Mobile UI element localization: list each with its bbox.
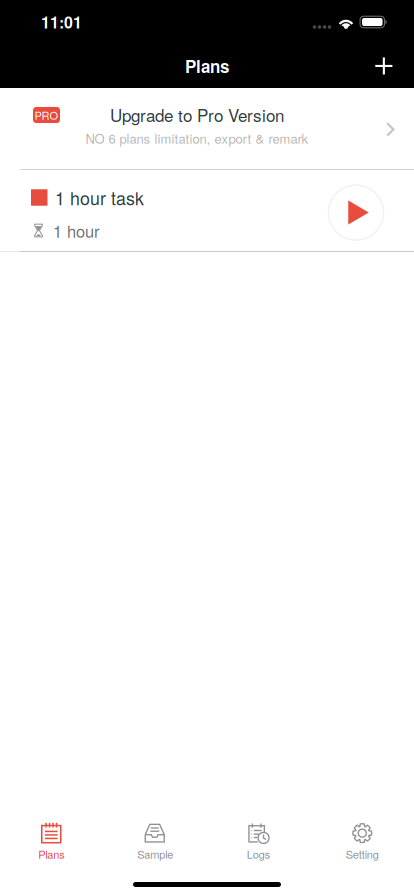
button[interactable]: 1 hour task bbox=[0, 170, 414, 251]
staticText: NO 6 plans limitation, export & remark bbox=[85, 129, 308, 147]
staticText: 11:01 bbox=[41, 10, 82, 33]
button[interactable]: Plans bbox=[0, 813, 103, 862]
staticText: Sample bbox=[137, 846, 173, 862]
button[interactable]: Setting bbox=[310, 813, 414, 862]
staticText: 1 hour bbox=[53, 219, 99, 242]
staticText: Plans bbox=[38, 846, 65, 862]
button[interactable]: Sample bbox=[103, 813, 207, 862]
button[interactable]: PRO bbox=[0, 88, 414, 169]
staticText: Setting bbox=[346, 846, 379, 862]
staticText: PRO bbox=[34, 107, 58, 123]
staticText: Plans bbox=[185, 54, 229, 78]
staticText: 1 hour task bbox=[55, 185, 144, 210]
staticText: Logs bbox=[247, 846, 271, 862]
staticText: Upgrade to Pro Version bbox=[110, 102, 284, 127]
button[interactable]: Add plan bbox=[361, 44, 414, 88]
button[interactable]: Logs bbox=[207, 813, 310, 862]
